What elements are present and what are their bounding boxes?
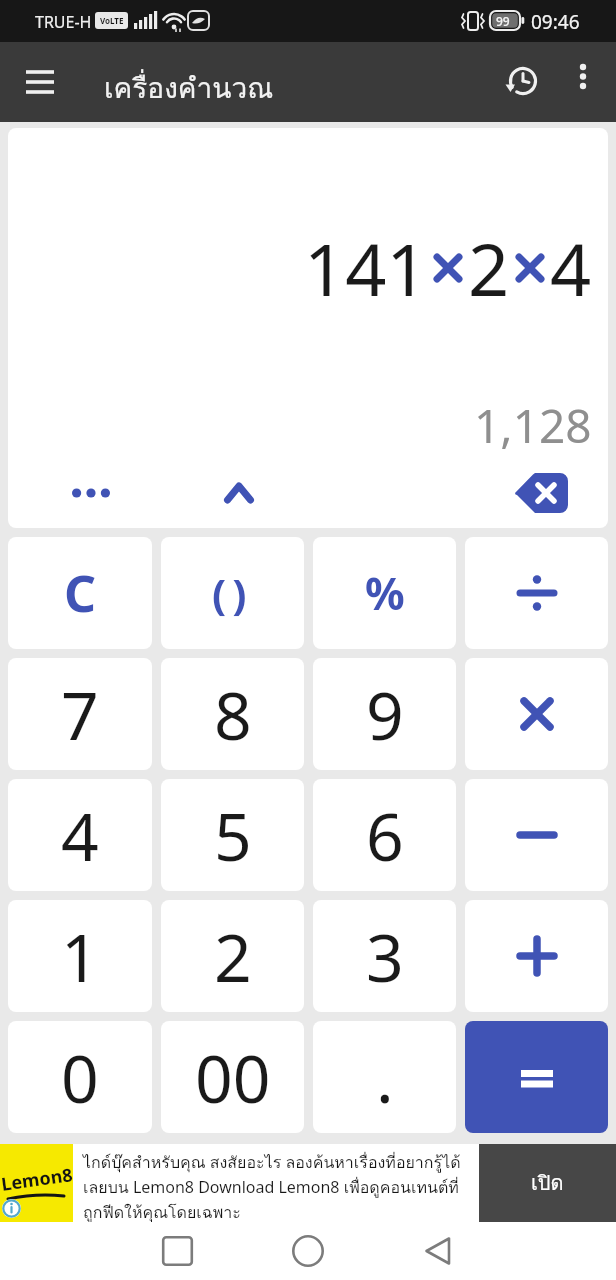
button[interactable]: Lemon8 [0, 1144, 616, 1222]
staticText: Lemon8 [0, 1162, 74, 1197]
button[interactable] [499, 465, 584, 521]
button[interactable] [465, 658, 608, 770]
staticText: เลยบน Lemon8 Download Lemon8 เพื่อดูคอนเ… [83, 1175, 459, 1200]
staticText: 5 [214, 790, 252, 880]
button[interactable] [570, 62, 596, 100]
button[interactable]: () [161, 537, 304, 649]
button[interactable]: % [313, 537, 456, 649]
staticText: 1,128 [474, 394, 592, 457]
button[interactable]: 00 [161, 1021, 304, 1133]
button[interactable]: 8 [161, 658, 304, 770]
staticText: 0 [61, 1032, 99, 1122]
button[interactable]: 6 [313, 779, 456, 891]
button[interactable]: . [313, 1021, 456, 1133]
button[interactable] [507, 65, 539, 97]
button[interactable]: 9 [313, 658, 456, 770]
staticText: ถูกฟีดให้คุณโดยเฉพาะ [83, 1200, 241, 1222]
staticText: . [376, 1032, 394, 1122]
staticText: เครื่องคำนวณ [104, 66, 274, 111]
button[interactable]: 4 [8, 779, 152, 891]
staticText: 8 [214, 669, 252, 759]
staticText: TRUE-H [35, 11, 92, 33]
button[interactable]: 3 [313, 900, 456, 1012]
button[interactable]: เปิด [479, 1144, 616, 1222]
button[interactable]: 1 [8, 900, 152, 1012]
staticText: 9 [366, 669, 404, 759]
button[interactable] [203, 465, 275, 521]
staticText: 99 [496, 13, 510, 29]
button[interactable] [146, 1222, 208, 1279]
button[interactable] [277, 1222, 339, 1279]
staticText: 141 [304, 219, 428, 317]
staticText: 09:46 [531, 9, 580, 35]
staticText: 4 [61, 790, 99, 880]
staticText: เปิด [531, 1167, 564, 1199]
button[interactable] [52, 465, 130, 521]
staticText: 00 [195, 1032, 271, 1122]
staticText: 7 [61, 669, 99, 759]
staticText: 4 [550, 219, 592, 317]
button[interactable] [407, 1222, 469, 1279]
button[interactable]: 2 [161, 900, 304, 1012]
button[interactable] [465, 900, 608, 1012]
staticText: 2 [468, 219, 510, 317]
staticText: 1 [61, 911, 99, 1001]
button[interactable] [465, 779, 608, 891]
staticText: VoLTE [100, 15, 124, 26]
staticText: () [212, 565, 253, 622]
staticText: 6 [366, 790, 404, 880]
button[interactable]: 5 [161, 779, 304, 891]
staticText: 3 [366, 911, 404, 1001]
button[interactable]: 7 [8, 658, 152, 770]
staticText: ไกด์บุ๊คสำหรับคุณ สงสัยอะไร ลองค้นหาเรื่… [83, 1150, 461, 1175]
button[interactable] [465, 537, 608, 649]
button[interactable]: C [8, 537, 152, 649]
button[interactable]: 0 [8, 1021, 152, 1133]
staticText: 2 [214, 911, 252, 1001]
staticText: % [365, 563, 405, 623]
button[interactable] [465, 1021, 608, 1133]
button[interactable] [14, 58, 66, 106]
staticText: C [64, 559, 97, 627]
